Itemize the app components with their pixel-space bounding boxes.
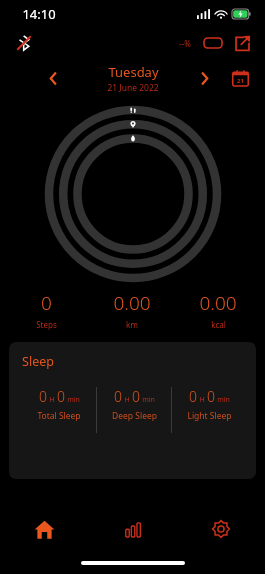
- button[interactable]: Home: [0, 506, 89, 552]
- staticText: Light Sleep: [187, 410, 232, 422]
- staticText: Sleep: [22, 353, 54, 370]
- button[interactable]: Settings: [177, 506, 265, 552]
- button[interactable]: Tuesday: [107, 63, 159, 94]
- staticText: 0: [189, 387, 197, 406]
- staticText: 0.00: [113, 290, 151, 316]
- button[interactable]: Statistics: [89, 506, 177, 552]
- staticText: kcal: [211, 319, 226, 330]
- staticText: min: [142, 395, 155, 405]
- staticText: Tuesday: [108, 63, 159, 81]
- button[interactable]: Share: [229, 30, 255, 56]
- staticText: 0.00: [199, 290, 237, 316]
- button[interactable]: Sleep: [9, 342, 256, 479]
- staticText: min: [217, 395, 230, 405]
- staticText: 0: [57, 387, 65, 406]
- button[interactable]: Device battery: [201, 31, 225, 55]
- staticText: 14:10: [22, 5, 56, 23]
- staticText: 21 June 2022: [107, 82, 159, 94]
- button[interactable]: Previous day: [40, 65, 66, 91]
- button[interactable]: 0.00: [175, 290, 261, 330]
- button[interactable]: 0.00: [89, 290, 175, 330]
- staticText: 21: [237, 77, 244, 85]
- staticText: Deep Sleep: [112, 410, 157, 422]
- button[interactable]: Battery percent unknown: [173, 31, 197, 55]
- staticText: Steps: [36, 319, 57, 330]
- staticText: H: [124, 395, 130, 405]
- button[interactable]: Bluetooth disconnected: [12, 31, 36, 55]
- staticText: 0: [41, 290, 52, 316]
- button[interactable]: Next day: [191, 65, 217, 91]
- staticText: 0: [39, 387, 47, 406]
- staticText: H: [199, 395, 205, 405]
- button[interactable]: 0: [4, 290, 89, 330]
- staticText: 0: [114, 387, 122, 406]
- staticText: 0: [207, 387, 215, 406]
- staticText: 0: [132, 387, 140, 406]
- staticText: H: [49, 395, 55, 405]
- staticText: km: [126, 319, 138, 330]
- staticText: min: [67, 395, 80, 405]
- staticText: Total Sleep: [37, 410, 81, 422]
- staticText: --%: [179, 38, 191, 49]
- button[interactable]: Open calendar: [227, 65, 253, 91]
